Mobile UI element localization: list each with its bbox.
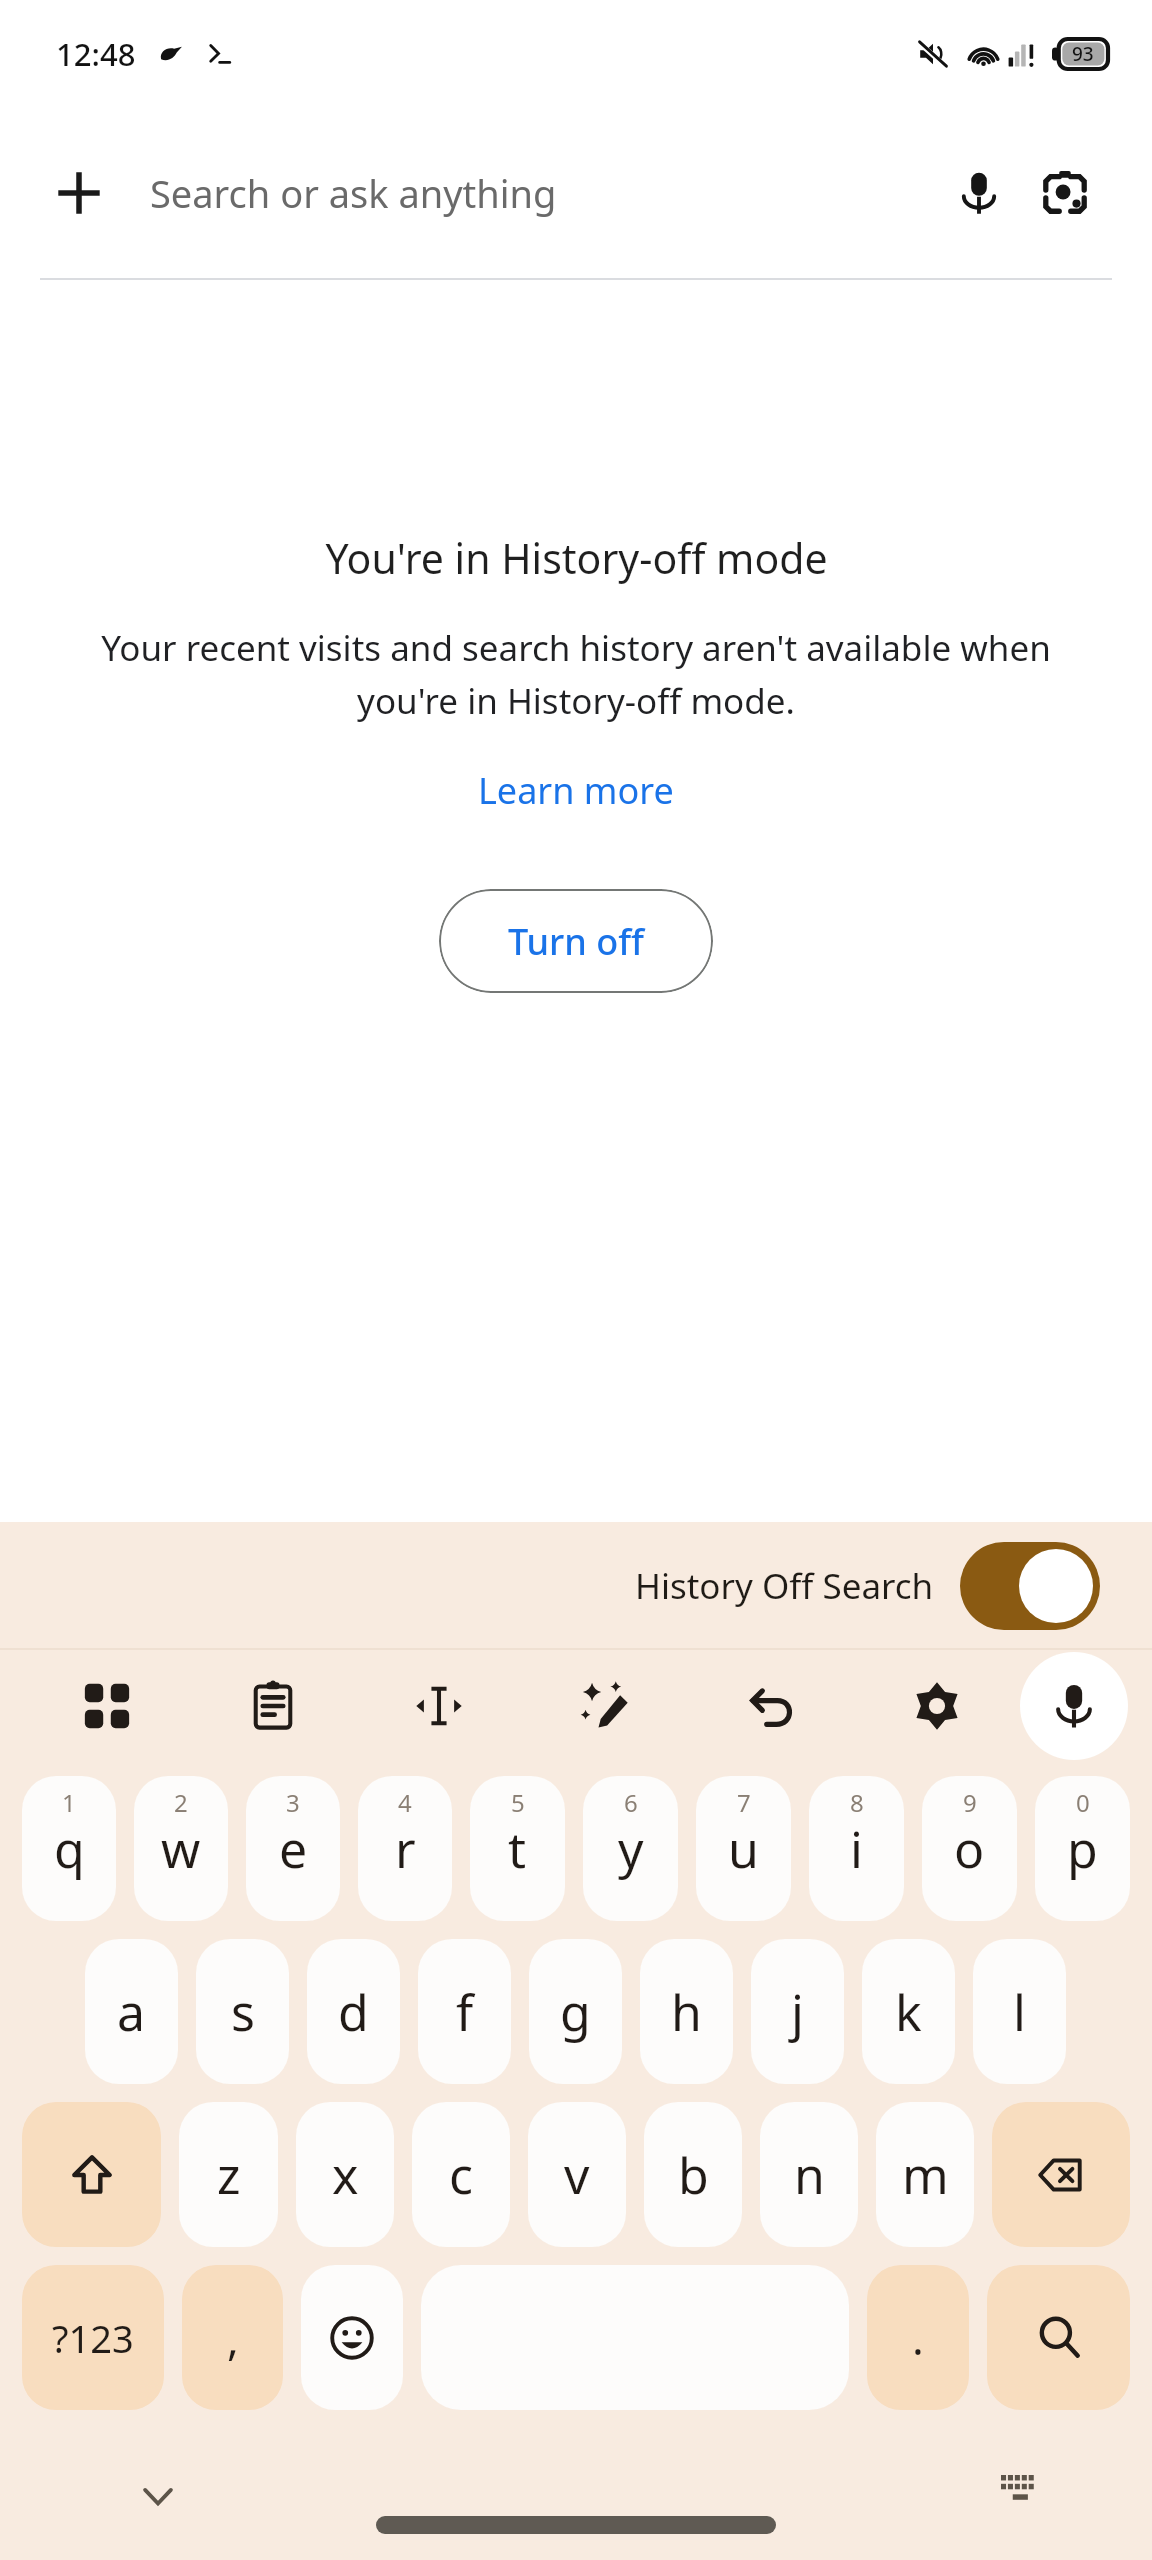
button[interactable]: Space (421, 2265, 849, 2410)
button[interactable]: Clipboard (190, 1650, 356, 1762)
staticText: b (678, 2141, 709, 2209)
staticText: Turn off (508, 917, 644, 966)
staticText: 7 (737, 1786, 751, 1819)
button[interactable]: Apps (24, 1650, 190, 1762)
staticText: i (850, 1815, 863, 1883)
staticText: You're in History-off mode (325, 530, 828, 586)
staticText: 5 (511, 1786, 525, 1819)
staticText: o (954, 1815, 985, 1883)
button[interactable]: i (809, 1776, 904, 1921)
staticText: 93 (1072, 41, 1094, 67)
button[interactable]: e (246, 1776, 340, 1921)
staticText: j (791, 1978, 804, 2046)
staticText: , (227, 2308, 239, 2368)
button[interactable]: Settings (854, 1650, 1020, 1762)
button[interactable]: Backspace (992, 2102, 1130, 2247)
button[interactable]: c (412, 2102, 510, 2247)
button[interactable]: n (760, 2102, 858, 2247)
button[interactable]: h (640, 1939, 733, 2084)
button[interactable]: l (973, 1939, 1066, 2084)
staticText: c (449, 2141, 473, 2209)
button[interactable]: f (418, 1939, 511, 2084)
button[interactable]: History Off Search (627, 1536, 1108, 1636)
staticText: 1 (62, 1786, 76, 1819)
staticText: d (338, 1978, 369, 2046)
staticText: a (117, 1978, 146, 2046)
button[interactable]: , (182, 2265, 283, 2410)
staticText: Learn more (478, 766, 674, 815)
button[interactable]: o (922, 1776, 1017, 1921)
staticText: q (54, 1815, 85, 1883)
staticText: t (508, 1815, 527, 1883)
staticText: r (395, 1815, 416, 1883)
button[interactable]: Emoji (301, 2265, 403, 2410)
button[interactable]: d (307, 1939, 400, 2084)
button[interactable]: Hide keyboard (120, 2458, 196, 2534)
staticText: 2 (174, 1786, 188, 1819)
staticText: g (560, 1978, 591, 2046)
button[interactable]: Cursor (356, 1650, 522, 1762)
button[interactable]: Undo (688, 1650, 854, 1762)
staticText: z (217, 2141, 241, 2209)
button[interactable]: a (85, 1939, 178, 2084)
button[interactable]: j (751, 1939, 844, 2084)
staticText: Your recent visits and search history ar… (70, 624, 1082, 724)
staticText: y (618, 1815, 644, 1883)
staticText: Search or ask anything (150, 167, 557, 219)
button[interactable]: Google Lens (1022, 150, 1108, 236)
button[interactable]: Switch keyboard (984, 2458, 1060, 2534)
staticText: e (279, 1815, 308, 1883)
staticText: 6 (624, 1786, 638, 1819)
button[interactable]: x (296, 2102, 394, 2247)
staticText: x (332, 2141, 359, 2209)
button[interactable]: Search (987, 2265, 1130, 2410)
staticText: 9 (963, 1786, 977, 1819)
staticText: ?123 (52, 2312, 134, 2364)
button[interactable]: q (22, 1776, 116, 1921)
button[interactable]: Turn off (439, 889, 713, 993)
staticText: 0 (1076, 1786, 1090, 1819)
button[interactable]: Learn more (468, 762, 684, 819)
button[interactable]: s (196, 1939, 289, 2084)
button[interactable]: ?123 (22, 2265, 164, 2410)
button[interactable]: Edit (522, 1650, 688, 1762)
staticText: s (231, 1978, 255, 2046)
staticText: u (728, 1815, 759, 1883)
staticText: History Off Search (635, 1562, 934, 1610)
button[interactable]: Search or ask anything (118, 108, 936, 278)
button[interactable]: z (179, 2102, 278, 2247)
button[interactable]: m (876, 2102, 974, 2247)
button[interactable]: Voice input (1020, 1652, 1128, 1760)
staticText: 12:48 (56, 33, 136, 75)
button[interactable]: v (528, 2102, 626, 2247)
button[interactable]: g (529, 1939, 622, 2084)
staticText: n (794, 2141, 825, 2209)
staticText: w (161, 1815, 201, 1883)
staticText: m (902, 2141, 949, 2209)
staticText: l (1013, 1978, 1026, 2046)
staticText: p (1067, 1815, 1098, 1883)
button[interactable]: . (867, 2265, 969, 2410)
button[interactable]: k (862, 1939, 955, 2084)
button[interactable]: Shift (22, 2102, 161, 2247)
button[interactable]: r (358, 1776, 452, 1921)
button[interactable]: b (644, 2102, 742, 2247)
staticText: h (671, 1978, 702, 2046)
button[interactable]: p (1035, 1776, 1130, 1921)
button[interactable]: Voice search (936, 150, 1022, 236)
staticText: k (895, 1978, 922, 2046)
button[interactable]: w (134, 1776, 228, 1921)
button[interactable]: Add (40, 154, 118, 232)
button[interactable]: u (696, 1776, 791, 1921)
staticText: 3 (286, 1786, 300, 1819)
staticText: v (564, 2141, 590, 2209)
staticText: 4 (398, 1786, 412, 1819)
button[interactable]: t (470, 1776, 565, 1921)
staticText: . (912, 2308, 924, 2368)
button[interactable]: y (583, 1776, 678, 1921)
staticText: f (456, 1978, 474, 2046)
staticText: 8 (850, 1786, 864, 1819)
